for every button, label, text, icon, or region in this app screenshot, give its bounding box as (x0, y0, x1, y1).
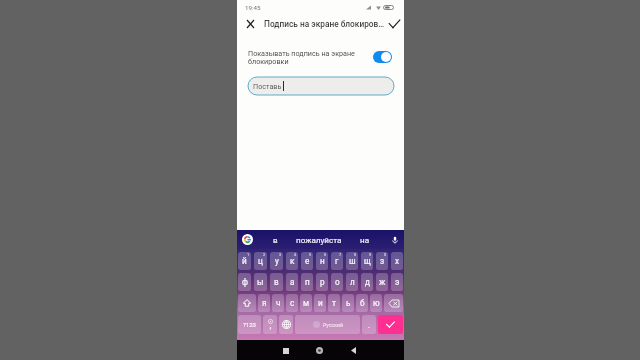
staticText: н (320, 256, 325, 266)
button[interactable]: Back (345, 342, 362, 359)
button[interactable]: Google (237, 230, 257, 249)
button[interactable]: Voice input (385, 230, 404, 249)
button[interactable]: у (270, 252, 283, 270)
button[interactable]: м (300, 294, 312, 312)
staticText: в (274, 277, 279, 287)
button[interactable]: Comma (263, 315, 277, 334)
button[interactable]: э (391, 273, 403, 291)
button[interactable]: на (345, 230, 385, 249)
staticText: х (395, 256, 400, 266)
button[interactable]: с (286, 294, 298, 312)
staticText: 0 (384, 252, 387, 256)
staticText: г (335, 256, 339, 266)
button[interactable]: Enter (378, 315, 403, 334)
button[interactable]: Поставь (248, 77, 394, 95)
staticText: 5 (309, 252, 312, 256)
staticText: т (332, 298, 336, 308)
staticText: Показывать подпись на экране блокировки (248, 49, 365, 66)
button[interactable]: о (331, 273, 343, 291)
staticText: на (360, 235, 370, 244)
staticText: пожалуйста (296, 235, 342, 244)
button[interactable]: Close (237, 14, 264, 34)
staticText: ю (373, 298, 380, 308)
button[interactable]: б (356, 294, 368, 312)
staticText: д (365, 277, 370, 287)
button[interactable]: Space (295, 315, 360, 334)
staticText: е (305, 256, 310, 266)
staticText: ф (242, 277, 248, 287)
staticText: и (318, 298, 323, 308)
staticText: б (360, 298, 365, 308)
staticText: в (273, 235, 278, 244)
staticText: ц (258, 256, 263, 266)
button[interactable]: ж (376, 273, 388, 291)
staticText: з (380, 256, 385, 266)
staticText: 3 (279, 252, 282, 256)
button[interactable]: ч (272, 294, 284, 312)
button[interactable]: Toggle lock screen message (373, 51, 392, 63)
button[interactable]: г (331, 252, 343, 270)
staticText: 6 (324, 252, 327, 256)
staticText: 8 (354, 252, 357, 256)
staticText: ь (346, 298, 351, 308)
button[interactable]: ю (370, 294, 382, 312)
staticText: ш (349, 256, 356, 266)
staticText: Подпись на экране блокиров… (264, 19, 385, 29)
button[interactable]: а (286, 273, 298, 291)
staticText: с (290, 298, 295, 308)
button[interactable]: я (258, 294, 270, 312)
staticText: 1 (247, 252, 250, 256)
button[interactable]: к (286, 252, 298, 270)
staticText: 4 (294, 252, 297, 256)
staticText: ч (276, 298, 281, 308)
staticText: . (368, 320, 371, 330)
staticText: а (290, 277, 295, 287)
button[interactable]: е (301, 252, 313, 270)
staticText: ?123 (243, 321, 256, 328)
staticText: л (350, 277, 355, 287)
staticText: м (303, 298, 310, 308)
button[interactable]: ?123 (238, 315, 261, 334)
staticText: Русский (323, 322, 343, 328)
button[interactable]: щ (361, 252, 373, 270)
staticText: я (262, 298, 267, 308)
button[interactable]: л (346, 273, 358, 291)
staticText: й (242, 256, 247, 266)
staticText: 19:45 (245, 4, 261, 11)
button[interactable]: ц (254, 252, 267, 270)
button[interactable]: й (238, 252, 251, 270)
button[interactable]: ь (342, 294, 354, 312)
staticText: Поставь (253, 82, 282, 90)
button[interactable]: в (270, 273, 283, 291)
button[interactable]: пожалуйста (293, 230, 345, 249)
button[interactable]: Backspace (384, 294, 403, 312)
staticText: р (320, 277, 325, 287)
button[interactable]: х (391, 252, 403, 270)
staticText: о (335, 277, 340, 287)
button[interactable]: Home (311, 342, 328, 359)
button[interactable]: з (376, 252, 388, 270)
button[interactable]: ф (238, 273, 251, 291)
staticText: 2 (263, 252, 266, 256)
staticText: у (275, 256, 279, 266)
button[interactable]: т (328, 294, 340, 312)
staticText: щ (364, 256, 371, 266)
button[interactable]: д (361, 273, 373, 291)
button[interactable]: Change language (279, 315, 293, 334)
staticText: п (305, 277, 310, 287)
button[interactable]: Shift (238, 294, 256, 312)
button[interactable]: Save (385, 14, 404, 34)
button[interactable]: ш (346, 252, 358, 270)
button[interactable]: и (314, 294, 326, 312)
button[interactable]: п (301, 273, 313, 291)
button[interactable]: в (257, 230, 293, 249)
button[interactable]: н (316, 252, 328, 270)
staticText: э (395, 277, 400, 287)
button[interactable]: . (362, 315, 376, 334)
staticText: ы (257, 277, 264, 287)
button[interactable]: ы (254, 273, 267, 291)
button[interactable]: р (316, 273, 328, 291)
staticText: ж (379, 277, 386, 287)
button[interactable]: Recents (277, 342, 294, 359)
staticText: 9 (369, 252, 372, 256)
